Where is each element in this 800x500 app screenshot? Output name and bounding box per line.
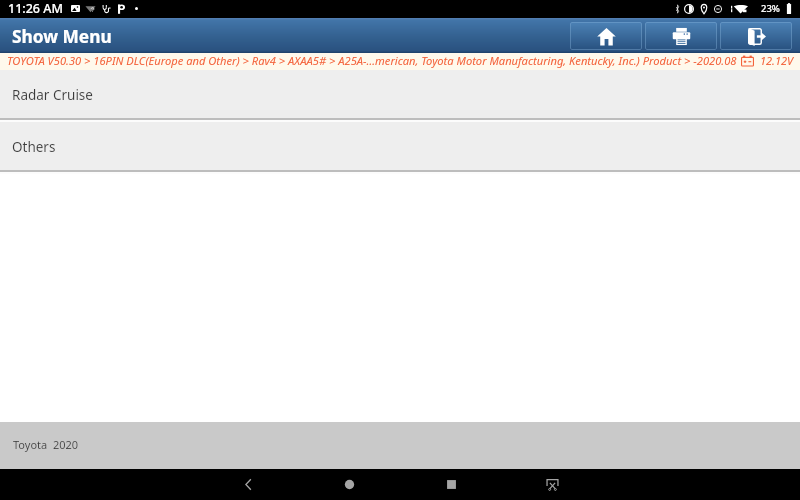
staticText: 11:26 AM	[8, 0, 63, 17]
button[interactable]: Radar Cruise	[0, 70, 800, 118]
staticText: Show Menu	[12, 25, 112, 49]
button[interactable]: Home	[333, 469, 365, 500]
staticText: 12.12V	[760, 53, 794, 68]
staticText: TOYOTA V50.30 > 16PIN DLC(Europe and Oth…	[7, 53, 737, 68]
button[interactable]: Exit	[720, 22, 792, 50]
button[interactable]: Screenshot	[536, 469, 568, 500]
button[interactable]: Recents	[435, 469, 467, 500]
staticText: Radar Cruise	[12, 86, 93, 104]
staticText: Toyota 2020	[13, 437, 79, 452]
button[interactable]: Home	[570, 22, 642, 50]
button[interactable]: Print	[645, 22, 717, 50]
button[interactable]: Back	[232, 469, 264, 500]
staticText: Others	[12, 138, 56, 156]
staticText: 23%	[761, 2, 780, 15]
button[interactable]: Others	[0, 122, 800, 170]
